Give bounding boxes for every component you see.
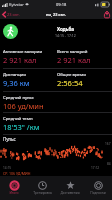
staticText: СР. 106 УД/МИН [3,171,31,176]
staticText: Дистанция [3,71,26,77]
staticText: Подписки [90,191,106,195]
staticText: 17:12 [91,166,100,170]
staticText: 2 921 кал [57,55,91,65]
staticText: 167 [105,142,111,146]
staticText: Средний пульс [3,94,34,100]
staticText: 18'53" /км [3,122,40,132]
staticText: Тренировка [33,191,52,195]
staticText: 9,36 км [3,78,30,88]
staticText: Пульс [3,136,16,142]
staticText: 106 уд/мин [3,101,44,111]
button[interactable]: 23 окт. [0,10,22,19]
staticText: 14:15 [3,166,12,170]
staticText: Ходьба [57,26,75,32]
staticText: Итоги [9,191,19,195]
staticText: 23 окт. [7,12,20,17]
staticText: пн, 23 окт. [46,12,66,17]
button[interactable]: Тренировка [28,179,56,197]
staticText: Активные калории [3,48,43,54]
staticText: Достижения [60,191,80,195]
staticText: 2:56:54 [57,78,83,88]
button[interactable]: Итоги [0,179,28,197]
staticText: Средний темп [3,115,33,121]
staticText: 14:15 - 17:12 [55,33,76,38]
staticText: 2 921 кал [3,55,37,65]
button[interactable]: Достижения [56,179,84,197]
staticText: 09:18 [56,2,67,7]
staticText: Всего калорий [57,48,88,54]
button[interactable]: Поделиться [101,9,112,19]
staticText: Kyivstar [9,2,24,7]
staticText: Общее время [57,71,86,77]
button[interactable]: Подписки [84,179,112,197]
staticText: 84 [107,162,111,166]
